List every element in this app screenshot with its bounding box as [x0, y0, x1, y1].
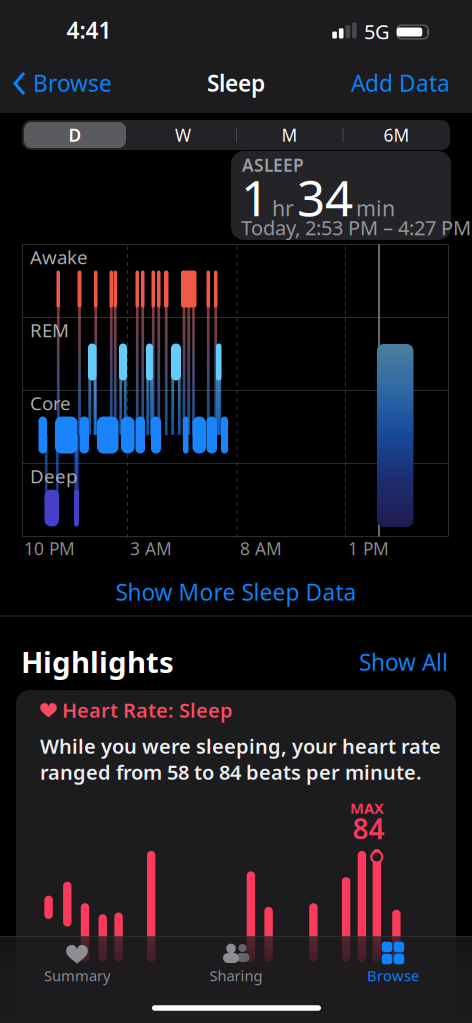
staticText: Highlights [21, 642, 174, 681]
staticText: REM [30, 318, 69, 342]
staticText: M [281, 123, 297, 146]
staticText: 8 AM [240, 537, 282, 560]
staticText: Sleep [207, 68, 265, 98]
staticText: While you were sleeping, your heart rate [40, 733, 441, 759]
staticText: Add Data [351, 68, 450, 98]
staticText: 3 AM [130, 537, 172, 560]
staticText: Heart Rate: Sleep [62, 697, 233, 723]
staticText: 84 [352, 810, 384, 847]
staticText: 6M [383, 123, 409, 146]
staticText: Show All [359, 647, 448, 677]
staticText: 10 PM [24, 537, 75, 560]
staticText: D [68, 123, 81, 146]
staticText: MAX [350, 798, 384, 818]
staticText: Browse [367, 966, 419, 985]
staticText: Summary [44, 966, 110, 985]
staticText: 1 [241, 164, 269, 230]
staticText: ranged from 58 to 84 beats per minute. [40, 759, 422, 785]
staticText: ASLEEP [242, 153, 304, 176]
staticText: Today, 2:53 PM – 4:27 PM [241, 214, 471, 241]
staticText: W [175, 123, 191, 146]
staticText: hr [272, 194, 294, 222]
staticText: Sharing [209, 966, 262, 985]
staticText: Show More Sleep Data [115, 577, 356, 607]
staticText: 1 PM [348, 537, 389, 560]
staticText: 5G [364, 18, 390, 45]
staticText: 4:41 [66, 15, 111, 45]
staticText: Deep [30, 464, 77, 488]
staticText: min [356, 194, 395, 222]
staticText: Browse [33, 68, 112, 98]
staticText: 34 [297, 164, 353, 230]
staticText: Awake [30, 245, 88, 269]
staticText: Core [30, 391, 71, 415]
